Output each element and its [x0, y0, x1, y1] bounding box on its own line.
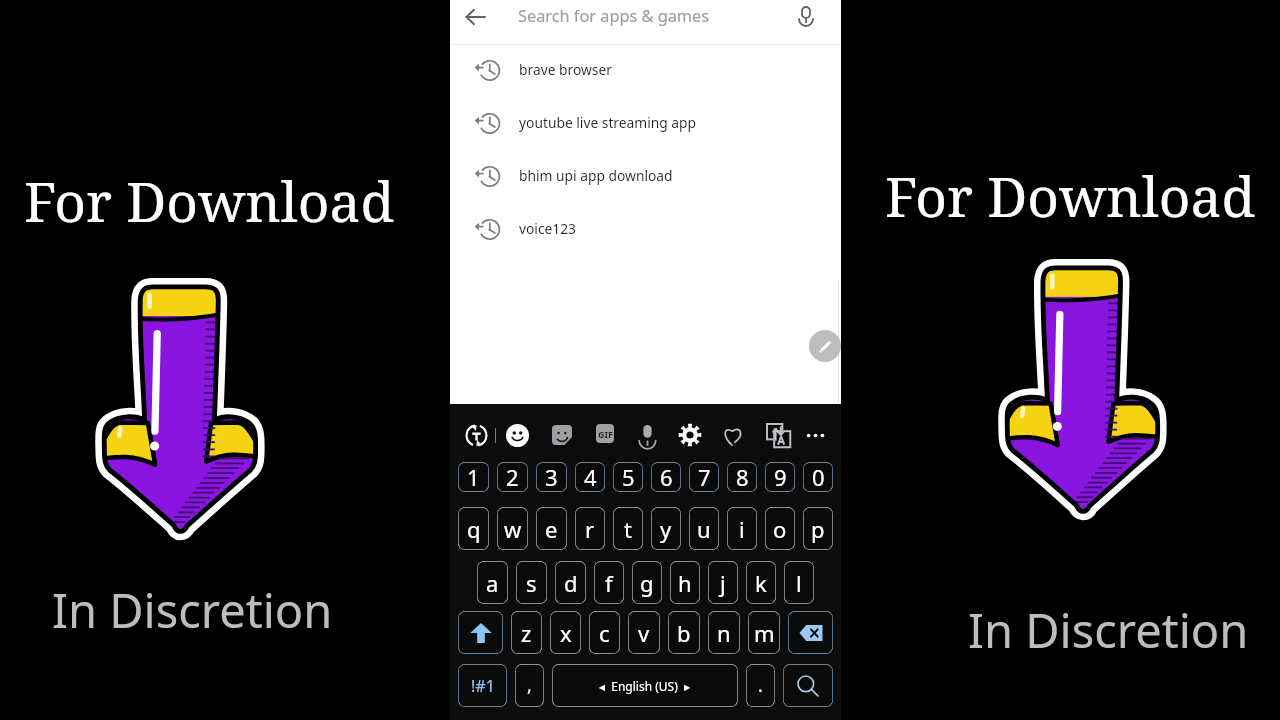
button[interactable]: u: [689, 507, 719, 550]
staticText: 0: [812, 462, 825, 492]
staticText: o: [773, 514, 787, 544]
button[interactable]: Settings: [673, 418, 707, 452]
button[interactable]: j: [708, 561, 738, 604]
button[interactable]: Voice input: [630, 418, 664, 452]
button[interactable]: Voice search: [792, 3, 820, 31]
button[interactable]: Favourite stickers: [716, 418, 750, 452]
staticText: n: [717, 618, 731, 648]
button[interactable]: 9: [765, 462, 795, 492]
button[interactable]: youtube live streaming app: [450, 96, 841, 149]
button[interactable]: voice123: [450, 202, 841, 255]
button[interactable]: ,: [515, 664, 544, 707]
staticText: e: [545, 514, 558, 544]
staticText: u: [697, 514, 711, 544]
button[interactable]: ◂ English (US) ▸: [552, 664, 738, 707]
button[interactable]: 6: [651, 462, 681, 492]
button[interactable]: x: [550, 611, 581, 654]
staticText: 2: [506, 462, 519, 492]
staticText: !#1: [471, 675, 495, 697]
staticText: r: [585, 514, 595, 544]
button[interactable]: Backspace: [788, 611, 833, 654]
staticText: m: [754, 618, 775, 648]
button[interactable]: m: [748, 611, 780, 654]
button[interactable]: brave browser: [450, 43, 841, 96]
button[interactable]: h: [670, 561, 700, 604]
button[interactable]: !#1: [458, 664, 507, 707]
button[interactable]: More options: [798, 418, 832, 452]
button[interactable]: p: [803, 507, 833, 550]
other: Search: [797, 675, 819, 697]
button[interactable]: r: [575, 507, 605, 550]
staticText: f: [605, 568, 613, 598]
staticText: g: [640, 568, 654, 598]
button[interactable]: 2: [497, 462, 528, 492]
button[interactable]: Voice typing toggle: [459, 418, 493, 452]
button[interactable]: Shift: [458, 611, 503, 654]
staticText: brave browser: [519, 60, 612, 79]
button[interactable]: g: [632, 561, 662, 604]
staticText: x: [560, 618, 572, 648]
button[interactable]: q: [458, 507, 489, 550]
button[interactable]: d: [555, 561, 586, 604]
button[interactable]: .: [746, 664, 775, 707]
staticText: c: [599, 618, 610, 648]
button[interactable]: l: [784, 561, 814, 604]
button[interactable]: w: [497, 507, 528, 550]
staticText: b: [677, 618, 691, 648]
staticText: 5: [622, 462, 635, 492]
other: Backspace: [799, 621, 823, 645]
button[interactable]: f: [594, 561, 624, 604]
staticText: i: [739, 514, 745, 544]
staticText: j: [720, 568, 726, 598]
button[interactable]: Search: [783, 664, 833, 707]
button[interactable]: e: [536, 507, 567, 550]
button[interactable]: t: [613, 507, 643, 550]
staticText: s: [526, 568, 537, 598]
staticText: For Download: [885, 158, 1256, 233]
button[interactable]: Emoji: [500, 418, 534, 452]
button[interactable]: y: [651, 507, 681, 550]
staticText: ◂ English (US) ▸: [599, 678, 691, 694]
staticText: a: [486, 568, 499, 598]
button[interactable]: Translate: [761, 418, 795, 452]
staticText: 6: [660, 462, 673, 492]
staticText: In Discretion: [52, 578, 333, 642]
button[interactable]: 0: [803, 462, 833, 492]
button[interactable]: c: [589, 611, 620, 654]
button[interactable]: 7: [689, 462, 719, 492]
staticText: v: [638, 618, 650, 648]
button[interactable]: i: [727, 507, 757, 550]
button[interactable]: v: [628, 611, 660, 654]
button[interactable]: 5: [613, 462, 643, 492]
button[interactable]: b: [668, 611, 700, 654]
button[interactable]: 4: [575, 462, 605, 492]
button[interactable]: bhim upi app download: [450, 149, 841, 202]
staticText: youtube live streaming app: [519, 113, 697, 132]
staticText: y: [660, 514, 672, 544]
button[interactable]: k: [746, 561, 776, 604]
button[interactable]: a: [477, 561, 508, 604]
button[interactable]: 3: [536, 462, 567, 492]
staticText: In Discretion: [968, 598, 1249, 662]
staticText: 1: [467, 462, 480, 492]
button[interactable]: s: [516, 561, 547, 604]
staticText: voice123: [519, 219, 576, 238]
staticText: l: [796, 568, 802, 598]
staticText: GIF: [598, 428, 613, 440]
staticText: .: [758, 673, 763, 698]
staticText: bhim upi app download: [519, 166, 673, 185]
staticText: For Download: [24, 163, 395, 238]
button[interactable]: Edit search: [809, 330, 841, 362]
button[interactable]: GIF: [596, 424, 614, 443]
button[interactable]: 1: [458, 462, 489, 492]
staticText: k: [755, 568, 767, 598]
button[interactable]: 8: [727, 462, 757, 492]
staticText: Search for apps & games: [518, 5, 710, 27]
staticText: z: [521, 618, 532, 648]
staticText: p: [811, 514, 825, 544]
button[interactable]: Stickers: [545, 418, 579, 452]
button[interactable]: o: [765, 507, 795, 550]
button[interactable]: Back: [461, 1, 493, 33]
button[interactable]: z: [511, 611, 542, 654]
button[interactable]: n: [708, 611, 740, 654]
